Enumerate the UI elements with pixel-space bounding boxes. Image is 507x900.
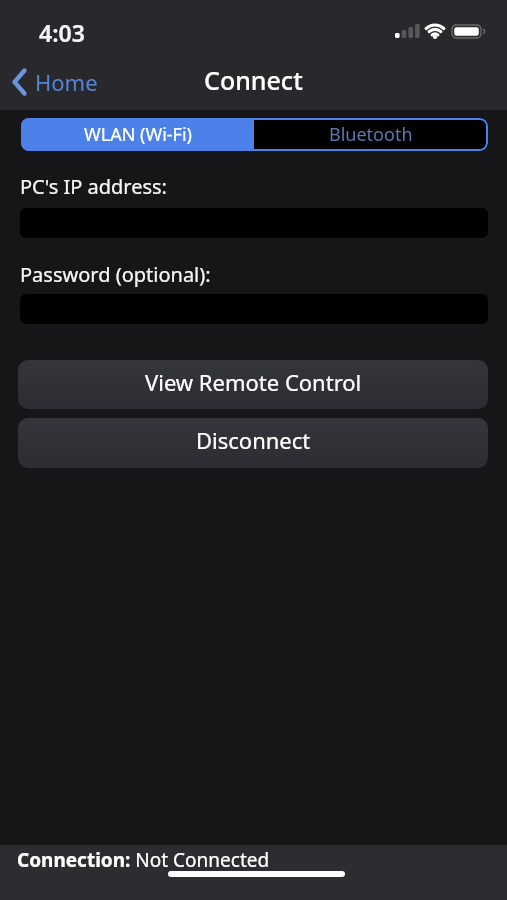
staticText: WLAN (Wi-Fi) bbox=[84, 122, 192, 147]
staticText: Password (optional): bbox=[20, 261, 211, 288]
staticText: Disconnect bbox=[196, 425, 311, 455]
staticText: View Remote Control bbox=[145, 367, 362, 397]
staticText: 4:03 bbox=[39, 17, 85, 48]
button[interactable]: Disconnect bbox=[18, 418, 488, 468]
staticText: Connection: Not Connected bbox=[17, 847, 270, 873]
button[interactable]: Bluetooth bbox=[254, 118, 488, 151]
staticText: PC's IP address: bbox=[20, 173, 167, 200]
button[interactable]: Home bbox=[12, 66, 98, 98]
staticText: Bluetooth bbox=[329, 122, 413, 147]
button[interactable]: View Remote Control bbox=[18, 360, 488, 409]
staticText: Home bbox=[35, 67, 98, 97]
staticText: Connect bbox=[204, 63, 303, 97]
button[interactable]: WLAN (Wi-Fi) bbox=[21, 118, 254, 151]
